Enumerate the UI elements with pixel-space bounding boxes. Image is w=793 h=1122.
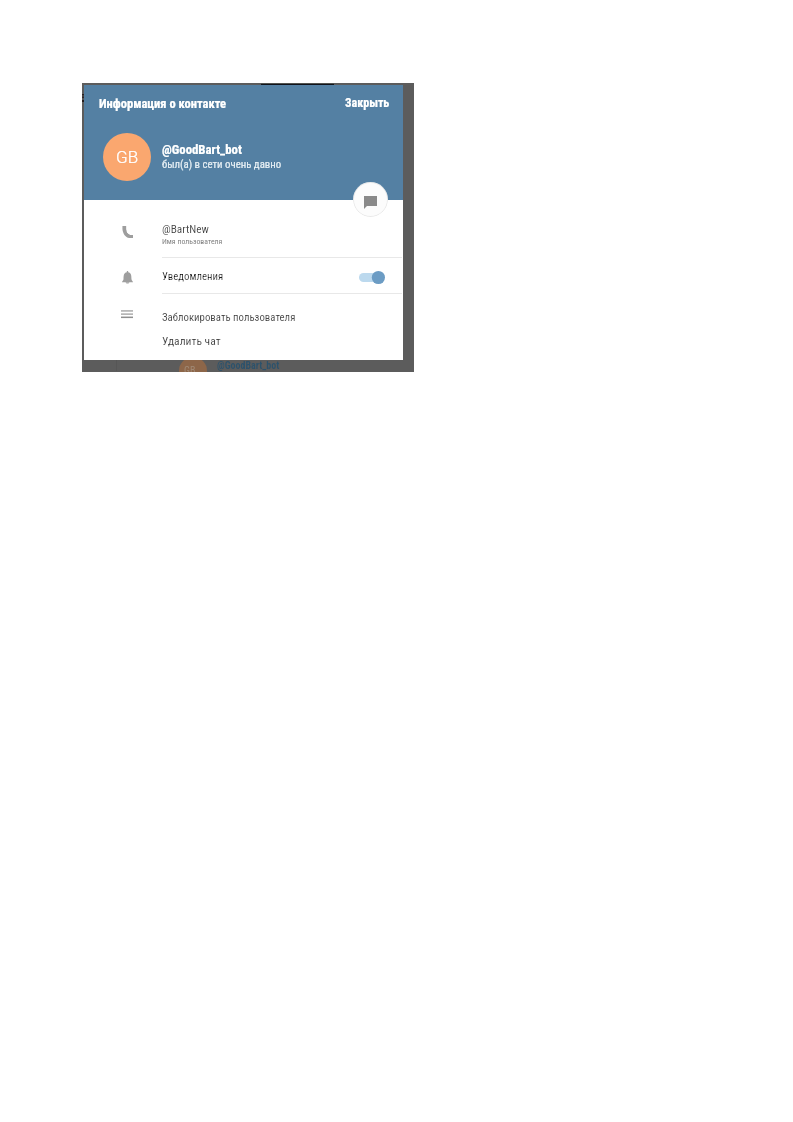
- button[interactable]: @BartNew: [84, 200, 403, 257]
- staticText: был(а) в сети очень давно: [162, 158, 282, 171]
- staticText: GB: [184, 365, 196, 372]
- staticText: @BartNew: [162, 223, 209, 236]
- staticText: @GoodBart_bot: [162, 142, 242, 157]
- staticText: Удалить чат: [162, 334, 221, 348]
- button[interactable]: Уведомления: [84, 258, 403, 296]
- staticText: GB: [116, 147, 139, 167]
- staticText: Информация о контакте: [99, 96, 226, 111]
- button[interactable]: Notifications on: [359, 270, 385, 285]
- button[interactable]: Закрыть: [338, 92, 397, 114]
- staticText: Заблокировать пользователя: [162, 311, 296, 324]
- button[interactable]: Contact avatar: [103, 133, 151, 181]
- button[interactable]: Заблокировать пользователя: [84, 297, 403, 331]
- staticText: Уведомления: [162, 270, 224, 283]
- staticText: Закрыть: [345, 96, 390, 110]
- staticText: @GoodBart_bot: [217, 360, 280, 372]
- button[interactable]: Send message: [353, 182, 388, 217]
- staticText: Имя пользователя: [162, 237, 223, 246]
- button[interactable]: Удалить чат: [84, 331, 403, 360]
